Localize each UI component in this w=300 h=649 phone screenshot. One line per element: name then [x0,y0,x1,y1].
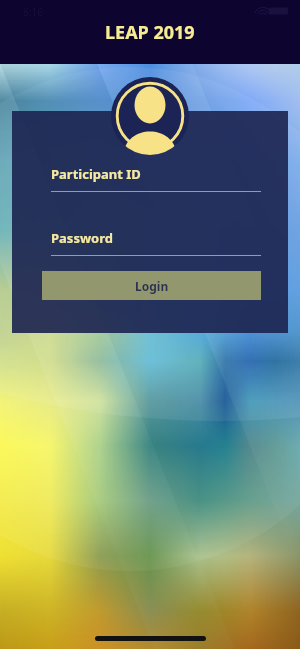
staticText: 6:16 [23,5,43,19]
staticText: LEAP 2019 [105,20,195,45]
button[interactable]: Login [42,271,261,300]
staticText: Login [135,278,169,294]
staticText: Password [51,229,113,247]
staticText: Participant ID [51,165,141,183]
other: Profile [111,77,189,155]
